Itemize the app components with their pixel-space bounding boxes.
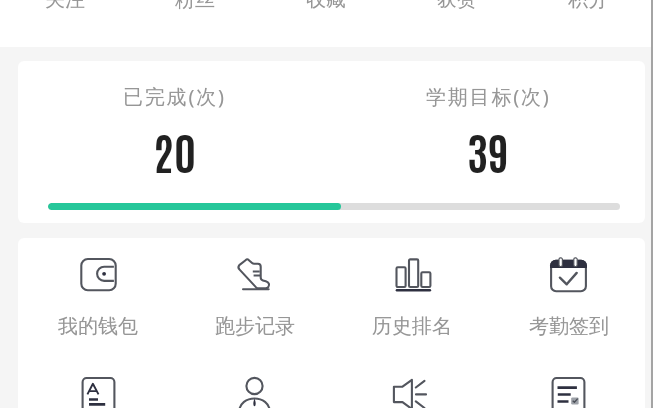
- staticText: 收藏: [306, 0, 346, 11]
- staticText: 20: [153, 121, 197, 179]
- staticText: 已完成(次): [123, 83, 226, 110]
- button[interactable]: Announcements: [333, 378, 490, 408]
- staticText: 历史排名: [372, 314, 452, 339]
- staticText: 跑步记录: [215, 314, 295, 339]
- button[interactable]: 关注: [0, 0, 130, 11]
- button[interactable]: 考勤签到: [490, 259, 645, 339]
- button[interactable]: Profile: [176, 378, 333, 408]
- button[interactable]: 收藏: [260, 0, 391, 11]
- button[interactable]: 积分: [522, 0, 653, 11]
- button[interactable]: 学期目标(次): [331, 83, 645, 179]
- button[interactable]: Forms: [490, 378, 645, 408]
- button[interactable]: 我的钱包: [20, 259, 176, 339]
- button[interactable]: 跑步记录: [176, 259, 333, 339]
- staticText: 考勤签到: [529, 314, 609, 339]
- staticText: 关注: [45, 0, 85, 11]
- staticText: 获赞: [437, 0, 477, 11]
- button[interactable]: Certificate: [20, 378, 176, 408]
- staticText: 粉丝: [175, 0, 215, 11]
- button[interactable]: 已完成(次): [18, 83, 331, 179]
- button[interactable]: 获赞: [391, 0, 522, 11]
- staticText: 学期目标(次): [426, 83, 551, 110]
- staticText: 39: [467, 121, 509, 179]
- button[interactable]: 粉丝: [130, 0, 260, 11]
- staticText: 我的钱包: [58, 314, 138, 339]
- button[interactable]: 历史排名: [333, 259, 490, 339]
- staticText: 积分: [568, 0, 608, 11]
